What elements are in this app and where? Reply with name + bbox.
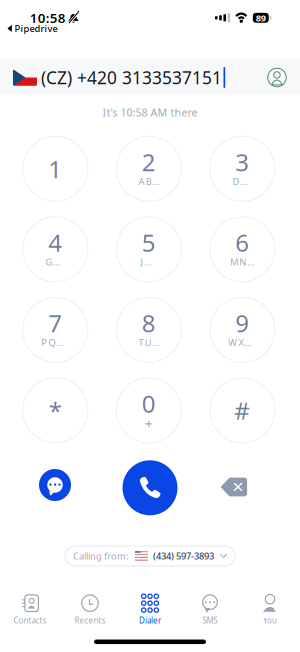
staticText: * xyxy=(49,394,62,426)
staticText: 5 xyxy=(142,226,156,258)
button[interactable]: 8 xyxy=(102,290,196,370)
staticText: Dialer xyxy=(139,615,161,626)
button[interactable]: 5 xyxy=(102,209,196,290)
staticText: Recents xyxy=(74,615,105,626)
button[interactable]: Calling from: xyxy=(65,546,235,566)
staticText: (434) 597-3893 xyxy=(153,550,214,562)
button[interactable]: SMS xyxy=(180,587,240,633)
button[interactable]: * xyxy=(9,370,102,451)
staticText: SMS xyxy=(202,615,217,626)
staticText: Calling from: xyxy=(73,550,129,562)
button[interactable]: 4 xyxy=(9,209,102,290)
staticText: TUV xyxy=(138,336,159,349)
staticText: It's 10:58 AM there xyxy=(102,105,197,119)
staticText: 4 xyxy=(48,226,62,258)
button[interactable]: 9 xyxy=(196,290,289,370)
staticText: MNO xyxy=(230,256,255,268)
staticText: 10:58 xyxy=(30,9,66,27)
button[interactable]: 2 xyxy=(102,129,196,209)
staticText: 9 xyxy=(235,307,249,339)
staticText: PQRS xyxy=(41,336,69,349)
button[interactable]: Call xyxy=(122,460,177,515)
staticText: 2 xyxy=(142,146,156,178)
staticText: 7 xyxy=(48,307,62,339)
staticText: WXYZ xyxy=(228,336,256,349)
button[interactable]: Delete last digit xyxy=(220,477,247,497)
staticText: 6 xyxy=(235,226,249,258)
staticText: JKL xyxy=(140,256,157,268)
button[interactable]: Contacts xyxy=(0,587,60,633)
staticText: 89 xyxy=(256,12,266,24)
staticText: 8 xyxy=(142,307,156,339)
staticText: 3 xyxy=(235,146,249,178)
staticText: # xyxy=(234,394,250,426)
staticText: 1 xyxy=(48,153,62,185)
button[interactable]: 3 xyxy=(196,129,289,209)
staticText: 0 xyxy=(142,387,156,419)
staticText: Pipedrive xyxy=(14,22,57,35)
staticText: Contacts xyxy=(13,615,46,626)
button[interactable]: 0 xyxy=(102,370,196,451)
button[interactable]: Recents xyxy=(60,587,120,633)
button[interactable]: 1 xyxy=(9,129,102,209)
button[interactable]: 6 xyxy=(196,209,289,290)
button[interactable]: You xyxy=(240,587,300,633)
staticText: GHI xyxy=(45,256,65,268)
button[interactable]: Send SMS xyxy=(39,469,71,501)
staticText: ABC xyxy=(138,175,159,188)
button[interactable]: Dialer xyxy=(120,587,180,633)
staticText: You xyxy=(263,615,277,626)
staticText: DEF xyxy=(232,175,252,188)
staticText: (CZ) +420 3133537151 xyxy=(41,66,222,89)
button[interactable]: # xyxy=(196,370,289,451)
button[interactable]: Pipedrive xyxy=(7,22,57,35)
button[interactable]: 7 xyxy=(9,290,102,370)
button[interactable]: Contact details xyxy=(267,67,287,87)
